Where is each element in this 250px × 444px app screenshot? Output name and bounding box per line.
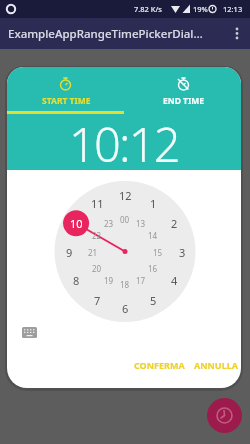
staticText: 2 [171, 216, 178, 231]
button[interactable]: END TIME [124, 67, 241, 114]
staticText: 12:13 [223, 4, 243, 14]
button[interactable] [22, 325, 44, 341]
button[interactable]: ExampleAppRangeTimePickerDial… [0, 18, 250, 49]
staticText: 22 [92, 230, 102, 241]
staticText: 9 [66, 245, 73, 260]
staticText: ANNULLA [194, 359, 238, 371]
button[interactable]: CONFERMA [124, 355, 194, 375]
button[interactable]: START TIME [7, 67, 124, 114]
staticText: 3 [179, 245, 186, 260]
staticText: 14 [148, 230, 158, 241]
staticText: 10:12 [69, 112, 179, 164]
staticText: 4 [171, 273, 178, 288]
staticText: 7.82 K/s [134, 4, 162, 14]
staticText: 7 [94, 293, 101, 308]
staticText: 17 [136, 275, 146, 286]
staticText: ExampleAppRangeTimePickerDial… [8, 26, 203, 42]
staticText: 16 [148, 263, 158, 274]
staticText: 21 [88, 247, 98, 258]
staticText: CONFERMA [134, 359, 185, 371]
staticText: 13 [136, 218, 146, 229]
staticText: 23 [104, 218, 114, 229]
button[interactable] [207, 398, 242, 433]
staticText: 10 [70, 216, 83, 231]
staticText: 6 [122, 301, 129, 316]
staticText: 8 [73, 273, 80, 288]
staticText: 19 [104, 275, 114, 286]
staticText: 20 [92, 263, 102, 274]
staticText: 11 [91, 196, 104, 211]
staticText: START TIME [42, 95, 91, 107]
staticText: 12 [119, 188, 132, 203]
button[interactable]: ANNULLA [191, 355, 241, 375]
staticText: 19% [193, 4, 208, 14]
staticText: 18 [120, 279, 130, 290]
staticText: 1 [150, 196, 157, 211]
staticText: 15 [153, 247, 163, 258]
staticText: 5 [150, 293, 157, 308]
staticText: 00 [120, 214, 130, 225]
staticText: END TIME [163, 95, 205, 107]
